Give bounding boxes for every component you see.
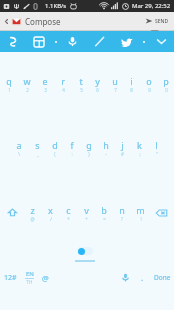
staticText: :	[71, 151, 73, 157]
button[interactable]: 12#	[0, 245, 20, 310]
button[interactable]: b	[95, 180, 113, 245]
staticText: SEND	[155, 18, 169, 25]
button[interactable]: SEND	[140, 12, 174, 30]
staticText: n	[119, 204, 125, 216]
staticText: Compose	[25, 16, 61, 27]
button[interactable]: s	[28, 116, 46, 180]
button[interactable]: o	[140, 52, 157, 116]
button[interactable]: Layout	[26, 31, 52, 52]
button[interactable]: e	[36, 52, 54, 116]
staticText: u	[112, 75, 118, 87]
button[interactable]: x	[41, 180, 59, 245]
staticText: 1	[8, 87, 11, 93]
button[interactable]: n	[113, 180, 131, 245]
button[interactable]: EN	[20, 245, 38, 310]
staticText: =	[103, 216, 106, 222]
button[interactable]: q	[0, 52, 18, 116]
staticText: Mar 29, 22:52	[132, 2, 171, 10]
staticText: g	[86, 139, 92, 151]
staticText: 9	[148, 87, 151, 93]
button[interactable]: h	[97, 116, 114, 180]
staticText: @	[30, 216, 35, 222]
button[interactable]: l	[148, 116, 165, 180]
button[interactable]: u	[106, 52, 123, 116]
staticText: 8	[130, 87, 133, 93]
staticText: !	[140, 216, 142, 222]
staticText: j	[121, 139, 124, 151]
staticText: z	[30, 204, 35, 216]
staticText: f	[70, 139, 74, 151]
button[interactable]: m	[131, 180, 149, 245]
button[interactable]: k	[131, 116, 148, 180]
staticText: EN	[26, 270, 34, 278]
button[interactable]: Backspace	[149, 180, 174, 245]
button[interactable]: c	[59, 180, 77, 245]
staticText: c	[66, 204, 71, 216]
staticText: @	[42, 273, 49, 283]
staticText: i	[130, 75, 133, 87]
staticText: #	[121, 151, 124, 157]
button[interactable]: p	[157, 52, 174, 116]
staticText: l	[155, 139, 158, 151]
button[interactable]: a	[10, 116, 28, 180]
button[interactable]: Space	[53, 245, 116, 310]
button[interactable]: Voice	[116, 245, 135, 310]
button[interactable]: v	[77, 180, 95, 245]
button[interactable]: f	[63, 116, 80, 180]
button[interactable]: @	[38, 245, 53, 310]
staticText: 6	[96, 87, 99, 93]
staticText: /	[50, 216, 52, 222]
staticText: "	[156, 151, 158, 157]
staticText: t	[79, 75, 83, 87]
staticText: 7	[114, 87, 117, 93]
staticText: -	[105, 151, 107, 157]
staticText: k	[137, 139, 142, 151]
button[interactable]: r	[54, 52, 72, 116]
staticText: \	[18, 151, 20, 157]
button[interactable]: Draw	[84, 31, 114, 52]
staticText: y	[95, 75, 100, 87]
button[interactable]: z	[24, 180, 41, 245]
staticText: x	[48, 204, 53, 216]
button[interactable]: w	[18, 52, 36, 116]
staticText: Done	[154, 273, 171, 282]
button[interactable]: y	[89, 52, 106, 116]
staticText: d	[52, 139, 58, 151]
button[interactable]: Shift	[0, 180, 24, 245]
staticText: o	[146, 75, 152, 87]
button[interactable]: Voice input	[60, 31, 84, 52]
button[interactable]: Handwriting	[0, 31, 26, 52]
button[interactable]: g	[80, 116, 97, 180]
staticText: TH	[26, 279, 33, 286]
staticText: +	[85, 216, 88, 222]
button[interactable]: Back	[0, 12, 65, 30]
staticText: q	[6, 75, 12, 87]
staticText: a	[16, 139, 22, 151]
staticText: 12#	[4, 273, 17, 283]
staticText: 0	[165, 87, 168, 93]
staticText: 4	[62, 87, 65, 93]
other: Back	[4, 19, 9, 24]
staticText: w	[23, 75, 31, 87]
staticText: ?	[121, 216, 123, 222]
staticText: _	[37, 151, 39, 157]
button[interactable]: Collapse keyboard	[148, 31, 174, 52]
staticText: r	[61, 75, 65, 87]
staticText: 5	[80, 87, 83, 93]
staticText: 3	[44, 87, 47, 93]
button[interactable]: Done	[150, 245, 174, 310]
staticText: h	[103, 139, 109, 151]
staticText: )	[88, 151, 90, 157]
button[interactable]: d	[46, 116, 63, 180]
button[interactable]: j	[114, 116, 131, 180]
staticText: (	[54, 151, 56, 157]
staticText: *	[67, 216, 70, 222]
staticText: ;	[139, 151, 141, 157]
staticText: m	[136, 204, 145, 216]
button[interactable]: .	[135, 245, 150, 310]
button[interactable]: t	[72, 52, 89, 116]
staticText: b	[101, 204, 107, 216]
button[interactable]: Twitter	[114, 31, 140, 52]
staticText: v	[84, 204, 89, 216]
button[interactable]: i	[123, 52, 140, 116]
